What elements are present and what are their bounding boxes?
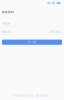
staticText: 获取验证: [50, 30, 62, 34]
staticText: 登录即表示同意: [12, 94, 33, 97]
staticText: 修改密码: [2, 10, 14, 14]
button[interactable]: 下一步: [2, 40, 62, 45]
staticText: 《用户协议》: [33, 94, 51, 97]
button[interactable]: 获取验证: [50, 30, 62, 34]
staticText: 验证码: [2, 30, 11, 34]
button[interactable]: 登录即表示同意: [0, 94, 64, 97]
staticText: 下一步: [27, 41, 36, 44]
staticText: 手机号: [2, 22, 11, 26]
